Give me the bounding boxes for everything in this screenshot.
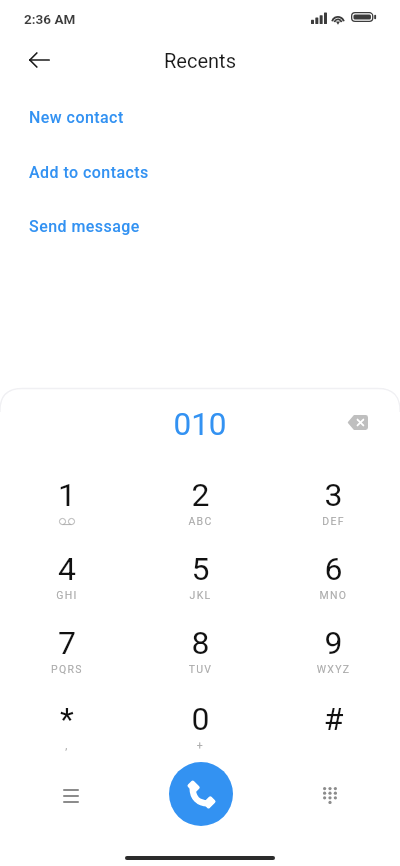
button[interactable]: 2 <box>134 459 267 533</box>
staticText: MNO <box>267 589 400 601</box>
staticText: ABC <box>134 515 267 527</box>
staticText: 2 <box>134 476 267 514</box>
button[interactable]: Backspace <box>336 401 378 443</box>
button[interactable]: 9 <box>267 607 400 681</box>
staticText: 2:36 AM <box>24 11 76 27</box>
button[interactable]: 5 <box>134 533 267 607</box>
staticText: GHI <box>0 589 134 601</box>
staticText: Recents <box>0 49 400 72</box>
button[interactable]: 0 <box>134 683 267 757</box>
staticText: DEF <box>267 515 400 527</box>
staticText: 7 <box>0 624 134 662</box>
button[interactable]: Call log <box>48 773 93 818</box>
button[interactable]: * <box>0 683 134 757</box>
staticText: Send message <box>29 217 140 236</box>
staticText: 5 <box>134 550 267 588</box>
button[interactable]: 3 <box>267 459 400 533</box>
staticText: 010 <box>0 406 400 443</box>
staticText: 8 <box>134 624 267 662</box>
staticText: 6 <box>267 550 400 588</box>
button[interactable]: 1 <box>0 459 134 533</box>
button[interactable]: Back <box>17 37 62 82</box>
button[interactable]: 4 <box>0 533 134 607</box>
staticText: 0 <box>134 700 267 738</box>
button[interactable]: 7 <box>0 607 134 681</box>
staticText: New contact <box>29 108 124 127</box>
button[interactable]: Call <box>169 762 233 826</box>
button[interactable]: # <box>267 683 400 757</box>
staticText: 3 <box>267 476 400 514</box>
staticText: # <box>267 700 400 738</box>
staticText: 4 <box>0 550 134 588</box>
staticText: PQRS <box>0 663 134 675</box>
staticText: 1 <box>0 476 134 514</box>
button[interactable]: Add to contacts <box>0 155 400 189</box>
staticText: + <box>134 739 267 751</box>
button[interactable]: New contact <box>0 100 400 134</box>
staticText: WXYZ <box>267 663 400 675</box>
button[interactable]: Send message <box>0 209 400 243</box>
button[interactable]: Dialpad <box>307 773 352 818</box>
staticText: 9 <box>267 624 400 662</box>
staticText: TUV <box>134 663 267 675</box>
button[interactable]: 6 <box>267 533 400 607</box>
staticText: JKL <box>134 589 267 601</box>
staticText: Add to contacts <box>29 163 149 182</box>
staticText: * <box>0 700 134 738</box>
button[interactable]: 8 <box>134 607 267 681</box>
